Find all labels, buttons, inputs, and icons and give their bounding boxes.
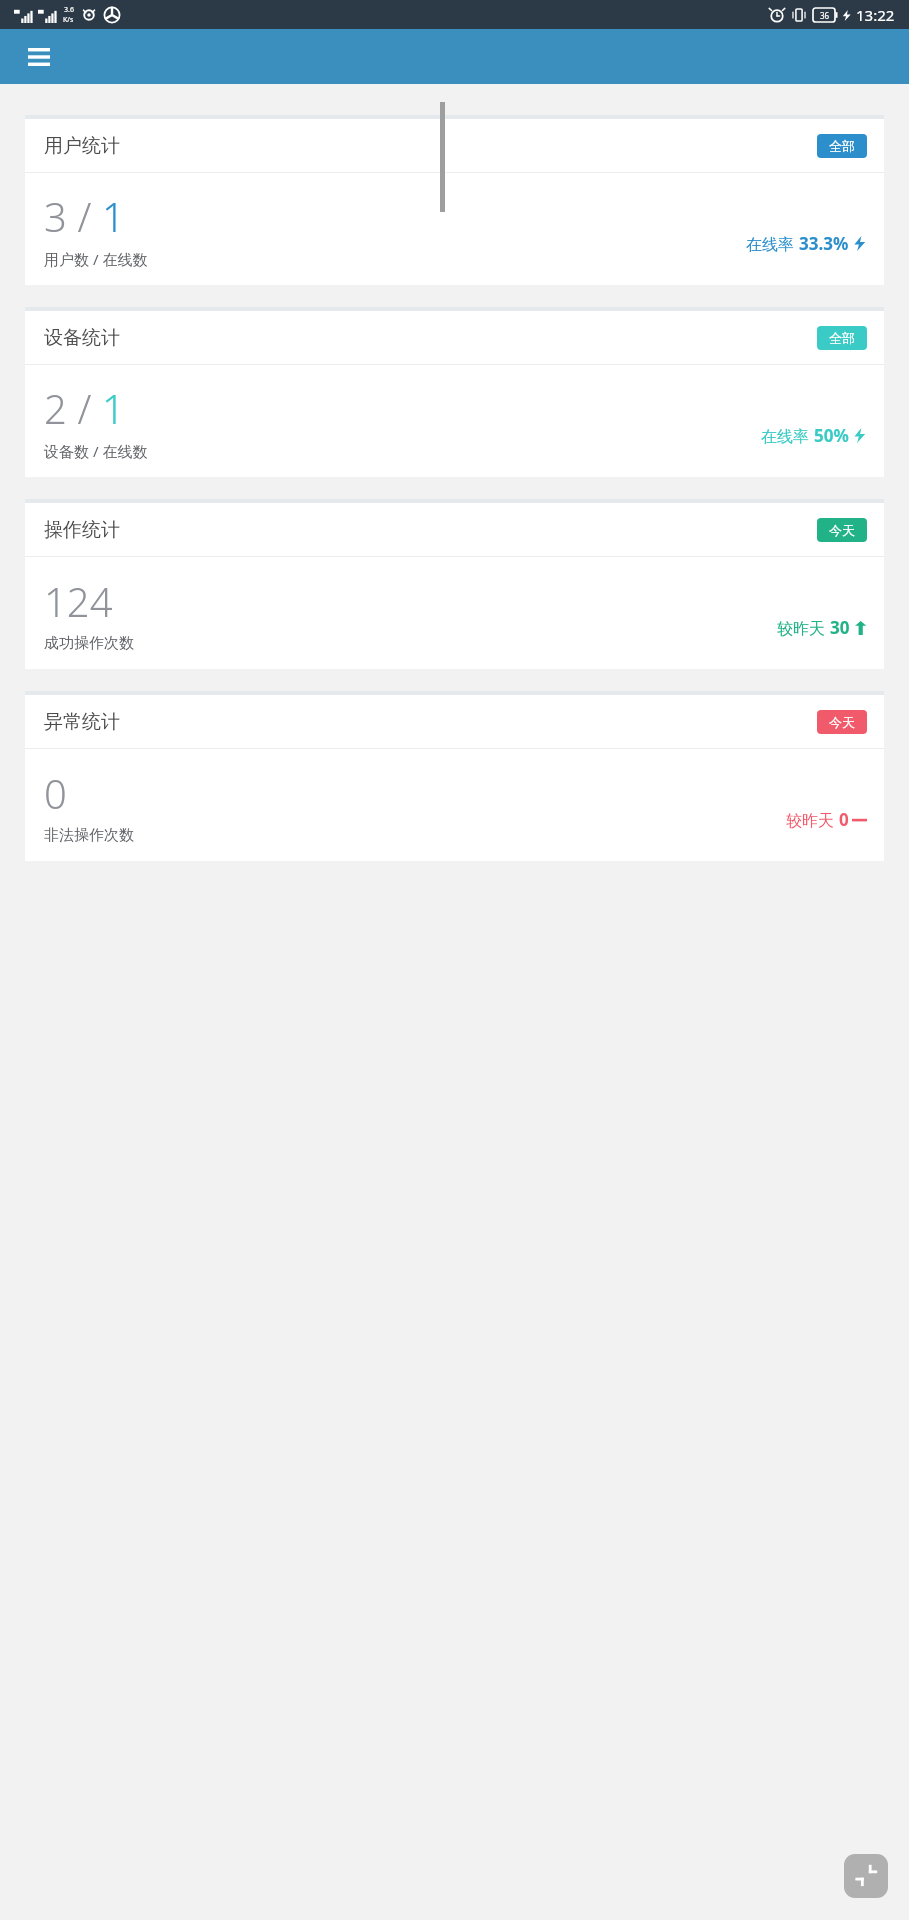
staticText: 124 [44,574,113,628]
staticText: 异常统计 [44,710,120,734]
staticText: 36 [820,10,830,21]
staticText: 设备统计 [44,326,120,350]
staticText: 33.3% [799,232,849,255]
staticText: 成功操作次数 [44,634,134,653]
staticText: 较昨天 [777,617,830,639]
staticText: / [67,381,102,435]
button[interactable]: 全部 [817,134,867,158]
staticText: / [67,189,102,243]
staticText: 较昨天 [786,809,839,831]
staticText: 50% [814,424,849,447]
button[interactable]: Menu [18,36,60,78]
staticText: 1 [102,381,125,435]
staticText: 1 [102,189,125,243]
staticText: K/s [63,15,74,25]
button[interactable]: 设备统计 [25,307,884,477]
staticText: 0 [839,808,849,831]
staticText: 今天 [829,522,855,538]
staticText: 2 [44,381,67,435]
staticText: 0 [44,766,67,820]
button[interactable]: 异常统计 [25,691,884,861]
staticText: 在线率 [746,233,799,255]
staticText: 设备数 / 在线数 [44,441,148,461]
staticText: 用户统计 [44,134,120,158]
staticText: 今天 [829,714,855,730]
button[interactable]: 全部 [817,326,867,350]
staticText: 13:22 [856,5,895,25]
staticText: 操作统计 [44,518,120,542]
staticText: 3 [44,189,67,243]
button[interactable]: 今天 [817,710,867,734]
staticText: 在线率 [761,425,814,447]
button[interactable]: 操作统计 [25,499,884,669]
button[interactable]: 用户统计 [25,115,884,285]
staticText: 非法操作次数 [44,826,134,845]
button[interactable]: 今天 [817,518,867,542]
staticText: 30 [830,616,850,639]
staticText: 3.6 [64,5,74,15]
staticText: 全部 [829,330,855,346]
button[interactable]: Screenshot [844,1854,888,1898]
staticText: 用户数 / 在线数 [44,249,148,269]
staticText: 全部 [829,138,855,154]
